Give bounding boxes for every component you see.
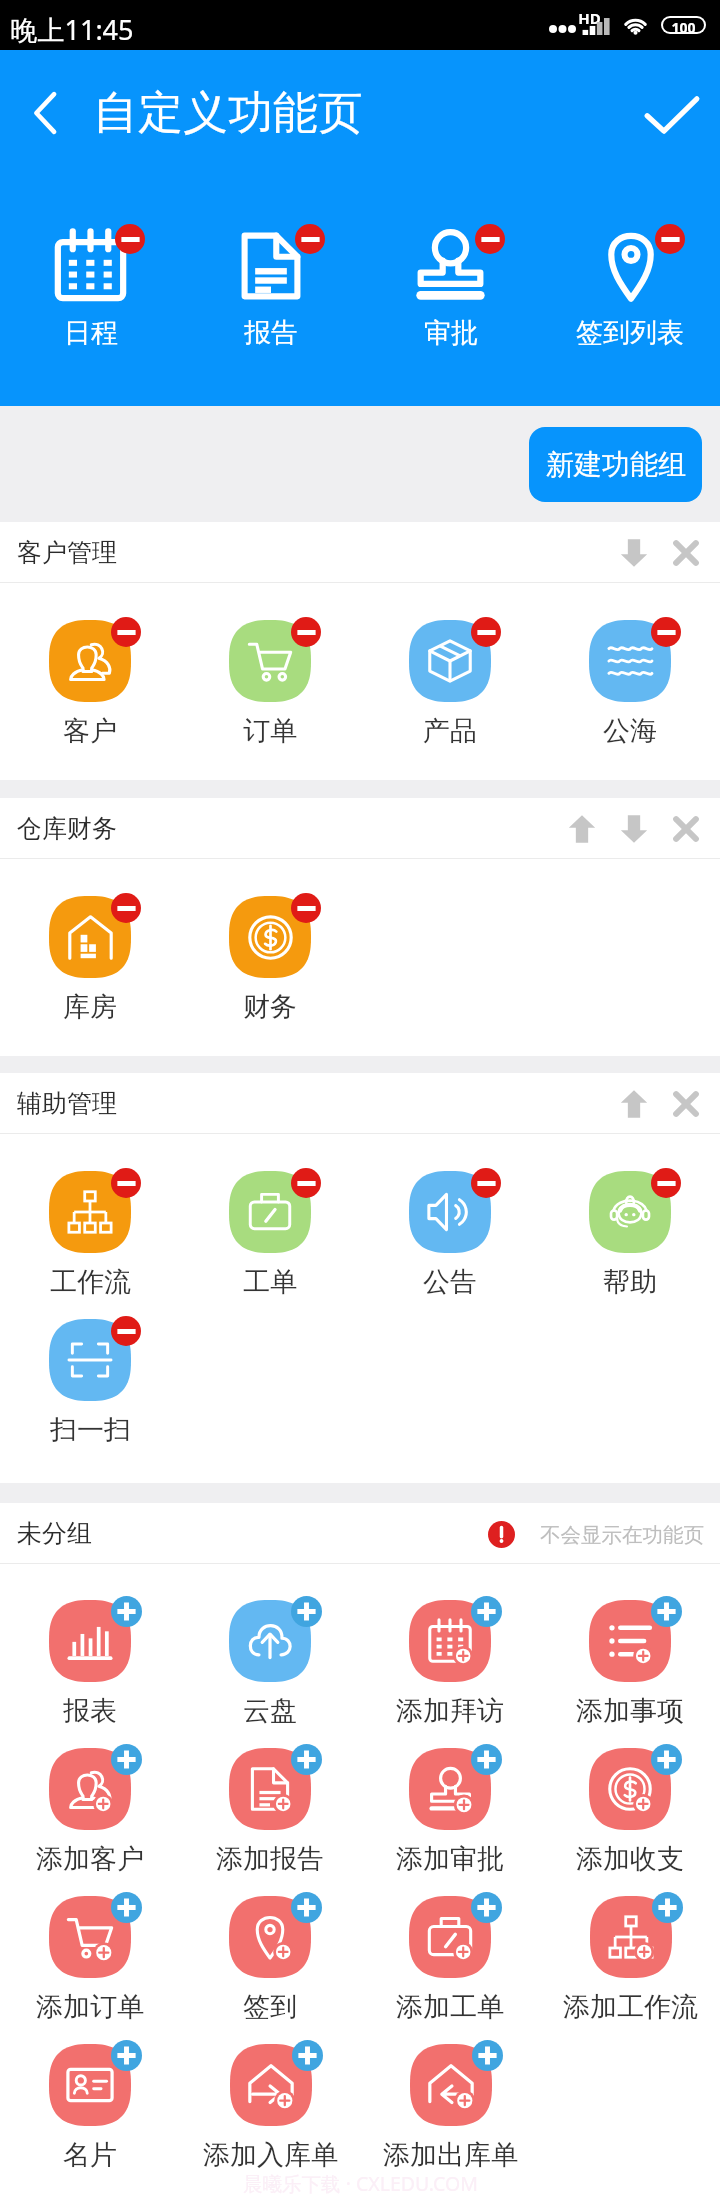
staticText: 产品 [423, 714, 477, 748]
button[interactable]: Add 添加审批 [360, 1748, 540, 1876]
staticText: 添加审批 [396, 1842, 504, 1876]
button[interactable]: Add 添加事项 [540, 1600, 720, 1728]
staticText: HD [578, 8, 601, 28]
button[interactable]: Remove 公告 [360, 1171, 540, 1299]
button[interactable]: Add 报表 [111, 1596, 142, 1627]
button[interactable]: Add 云盘 [180, 1600, 360, 1728]
button[interactable]: Add 签到 [180, 1896, 360, 2024]
staticText: 审批 [424, 316, 478, 350]
staticText: 订单 [243, 714, 297, 748]
button[interactable]: Remove 日程 [0, 230, 180, 350]
staticText: 辅助管理 [17, 1088, 117, 1119]
button[interactable]: Remove 订单 [180, 620, 360, 748]
button[interactable]: Add 添加报告 [291, 1744, 322, 1775]
staticText: 云盘 [243, 1694, 297, 1728]
button[interactable]: Confirm [634, 79, 710, 151]
staticText: 添加事项 [576, 1694, 684, 1728]
button[interactable]: Remove 报告 [180, 230, 360, 350]
staticText: 财务 [243, 990, 297, 1024]
button[interactable]: Add 添加工单 [360, 1896, 540, 2024]
button[interactable]: Remove 订单 [291, 617, 321, 647]
staticText: 签到列表 [576, 316, 684, 350]
button[interactable]: Remove 报告 [295, 224, 325, 254]
button[interactable]: Delete 客户管理 [660, 527, 712, 579]
button[interactable]: Add 添加报告 [180, 1748, 360, 1876]
button[interactable]: Remove 客户 [0, 620, 180, 748]
button[interactable]: Remove 财务 [291, 893, 321, 923]
button[interactable]: Remove 扫一扫 [0, 1319, 180, 1447]
button[interactable]: Remove 库房 [0, 896, 180, 1024]
button[interactable]: Move 仓库财务 up [556, 803, 608, 855]
button[interactable]: Remove 工单 [180, 1171, 360, 1299]
button[interactable]: Add 添加入库单 [180, 2044, 360, 2172]
button[interactable]: Remove 工作流 [111, 1168, 141, 1198]
button[interactable]: Remove 签到列表 [540, 230, 720, 350]
staticText: 晨曦乐下载 · CXLEDU.COM [243, 2170, 478, 2197]
staticText: 客户管理 [17, 537, 117, 568]
button[interactable]: Remove 帮助 [651, 1168, 681, 1198]
staticText: 公告 [423, 1265, 477, 1299]
button[interactable]: Remove 日程 [115, 224, 145, 254]
staticText: 帮助 [603, 1265, 657, 1299]
staticText: 100 [671, 18, 696, 32]
button[interactable]: Add 添加审批 [471, 1744, 502, 1775]
button[interactable]: Remove 客户 [111, 617, 141, 647]
staticText: 添加报告 [216, 1842, 324, 1876]
button[interactable]: Add 添加订单 [111, 1892, 142, 1923]
button[interactable]: Remove 审批 [360, 230, 540, 350]
button[interactable]: Add 添加客户 [111, 1744, 142, 1775]
button[interactable]: Remove 帮助 [540, 1171, 720, 1299]
button[interactable]: Add 添加入库单 [292, 2040, 323, 2071]
button[interactable]: Add 添加收支 [540, 1748, 720, 1876]
staticText: 工单 [243, 1265, 297, 1299]
button[interactable]: Add 添加出库单 [360, 2044, 540, 2172]
button[interactable]: Remove 公告 [471, 1168, 501, 1198]
staticText: 晚上11:45 [10, 11, 134, 48]
button[interactable]: Add 添加出库单 [472, 2040, 503, 2071]
staticText: 自定义功能页 [93, 85, 363, 142]
button[interactable]: Delete 辅助管理 [660, 1078, 712, 1130]
button[interactable]: Move 仓库财务 down [608, 803, 660, 855]
staticText: 仓库财务 [17, 813, 117, 844]
staticText: 添加入库单 [203, 2138, 338, 2172]
button[interactable]: Remove 工单 [291, 1168, 321, 1198]
button[interactable]: Add 添加工单 [471, 1892, 502, 1923]
button[interactable]: Remove 公海 [651, 617, 681, 647]
staticText: 添加客户 [36, 1842, 144, 1876]
button[interactable]: Back [13, 79, 77, 147]
button[interactable]: Add 添加工作流 [652, 1892, 683, 1923]
staticText: 未分组 [17, 1518, 92, 1549]
button[interactable]: Move 辅助管理 up [608, 1078, 660, 1130]
button[interactable]: Add 添加拜访 [360, 1600, 540, 1728]
button[interactable]: Remove 签到列表 [655, 224, 685, 254]
button[interactable]: Add 名片 [111, 2040, 142, 2071]
button[interactable]: Add 报表 [0, 1600, 180, 1728]
staticText: 新建功能组 [546, 447, 686, 482]
staticText: 客户 [63, 714, 117, 748]
button[interactable]: Remove 审批 [475, 224, 505, 254]
staticText: 报表 [63, 1694, 117, 1728]
button[interactable]: Remove 产品 [360, 620, 540, 748]
button[interactable]: Add 名片 [0, 2044, 180, 2172]
button[interactable]: Delete 仓库财务 [660, 803, 712, 855]
button[interactable]: Add 添加订单 [0, 1896, 180, 2024]
button[interactable]: Add 添加收支 [651, 1744, 682, 1775]
button[interactable]: Remove 财务 [180, 896, 360, 1024]
button[interactable]: Remove 公海 [540, 620, 720, 748]
button[interactable]: Remove 工作流 [0, 1171, 180, 1299]
staticText: 添加收支 [576, 1842, 684, 1876]
staticText: 公海 [603, 714, 657, 748]
button[interactable]: Remove 库房 [111, 893, 141, 923]
button[interactable]: Remove 产品 [471, 617, 501, 647]
staticText: 添加出库单 [383, 2138, 518, 2172]
button[interactable]: Move 客户管理 down [608, 527, 660, 579]
button[interactable]: Add 添加事项 [651, 1596, 682, 1627]
button[interactable]: Add 云盘 [291, 1596, 322, 1627]
staticText: 添加工单 [396, 1990, 504, 2024]
button[interactable]: Add 添加工作流 [540, 1896, 720, 2024]
button[interactable]: Remove 扫一扫 [111, 1316, 141, 1346]
button[interactable]: Add 签到 [291, 1892, 322, 1923]
button[interactable]: 新建功能组 [529, 427, 702, 502]
button[interactable]: Add 添加客户 [0, 1748, 180, 1876]
button[interactable]: Add 添加拜访 [471, 1596, 502, 1627]
